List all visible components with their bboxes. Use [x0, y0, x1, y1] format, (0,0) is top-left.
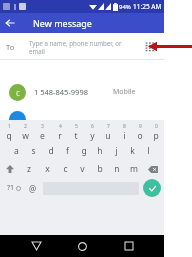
- staticText: i: [123, 130, 126, 142]
- staticText: 11:25 AM: [133, 2, 162, 11]
- button[interactable]: ?1: [3, 178, 25, 198]
- button[interactable]: 0: [148, 122, 164, 142]
- button[interactable]: 3: [34, 122, 51, 142]
- button[interactable]: 9: [132, 122, 148, 142]
- staticText: 3: [41, 123, 44, 130]
- button[interactable]: s: [25, 142, 42, 160]
- staticText: b: [97, 163, 103, 175]
- button[interactable]: d: [42, 142, 59, 160]
- staticText: n: [114, 163, 120, 175]
- button[interactable]: 2: [17, 122, 34, 142]
- staticText: 94%: [119, 3, 131, 11]
- staticText: c: [16, 87, 20, 98]
- button[interactable]: b: [91, 160, 108, 178]
- button[interactable]: l: [140, 142, 156, 160]
- button[interactable]: z: [20, 160, 38, 178]
- staticText: s: [31, 145, 36, 157]
- staticText: o: [137, 130, 143, 142]
- button[interactable]: 6: [84, 122, 100, 142]
- staticText: h: [97, 145, 103, 157]
- button[interactable]: n: [108, 160, 125, 178]
- button[interactable]: Back: [25, 235, 47, 257]
- button[interactable]: g: [76, 142, 92, 160]
- button[interactable]: Recent apps: [118, 235, 140, 257]
- button[interactable]: f: [59, 142, 76, 160]
- staticText: 0: [155, 123, 158, 130]
- button[interactable]: c: [0, 77, 164, 107]
- button[interactable]: Dial pad: [142, 39, 158, 55]
- staticText: r: [58, 130, 62, 142]
- staticText: k: [130, 145, 135, 157]
- button[interactable]: Send: [143, 179, 161, 197]
- button[interactable]: 4: [51, 122, 68, 142]
- staticText: e: [40, 130, 45, 142]
- button[interactable]: x: [38, 160, 56, 178]
- staticText: 7: [107, 123, 110, 130]
- staticText: c: [63, 163, 68, 175]
- staticText: 5: [75, 123, 78, 130]
- staticText: f: [66, 145, 69, 157]
- staticText: j: [115, 145, 118, 157]
- button[interactable]: Shift: [0, 160, 20, 178]
- staticText: w: [22, 130, 29, 142]
- button[interactable]: Backspace: [142, 160, 164, 178]
- staticText: x: [45, 163, 50, 175]
- staticText: q: [6, 130, 12, 142]
- button[interactable]: m: [125, 160, 142, 178]
- button[interactable]: k: [124, 142, 140, 160]
- button[interactable]: 5: [68, 122, 84, 142]
- staticText: 8: [123, 123, 126, 130]
- button[interactable]: 8: [116, 122, 132, 142]
- staticText: z: [27, 163, 31, 175]
- staticText: p: [153, 130, 159, 142]
- staticText: g: [81, 145, 87, 157]
- staticText: New message: [33, 17, 92, 29]
- button[interactable]: j: [108, 142, 124, 160]
- button[interactable]: Navigate up: [0, 13, 20, 33]
- button[interactable]: Home: [71, 235, 93, 257]
- staticText: 2: [24, 123, 27, 130]
- staticText: email: [29, 47, 45, 55]
- staticText: 9: [139, 123, 142, 130]
- staticText: 1: [8, 123, 11, 130]
- staticText: d: [48, 145, 54, 157]
- staticText: @: [29, 183, 37, 194]
- button[interactable]: a: [8, 142, 25, 160]
- button[interactable]: c: [56, 160, 74, 178]
- button[interactable]: 7: [100, 122, 116, 142]
- staticText: m: [130, 163, 138, 175]
- staticText: l: [147, 145, 150, 157]
- staticText: 4: [59, 123, 62, 130]
- button[interactable]: v: [74, 160, 91, 178]
- staticText: t: [74, 130, 78, 142]
- button[interactable]: 1: [0, 122, 17, 142]
- staticText: 1 548-845-9998: [34, 87, 88, 97]
- staticText: To: [6, 42, 15, 52]
- staticText: Mobile: [113, 87, 136, 97]
- staticText: y: [90, 130, 95, 142]
- button[interactable]: h: [92, 142, 108, 160]
- staticText: v: [80, 163, 85, 175]
- staticText: Type a name, phone number, or: [29, 39, 122, 47]
- button[interactable]: @: [25, 178, 41, 198]
- staticText: a: [14, 145, 19, 157]
- staticText: ?1: [7, 183, 15, 193]
- staticText: 6: [91, 123, 94, 130]
- staticText: u: [105, 130, 111, 142]
